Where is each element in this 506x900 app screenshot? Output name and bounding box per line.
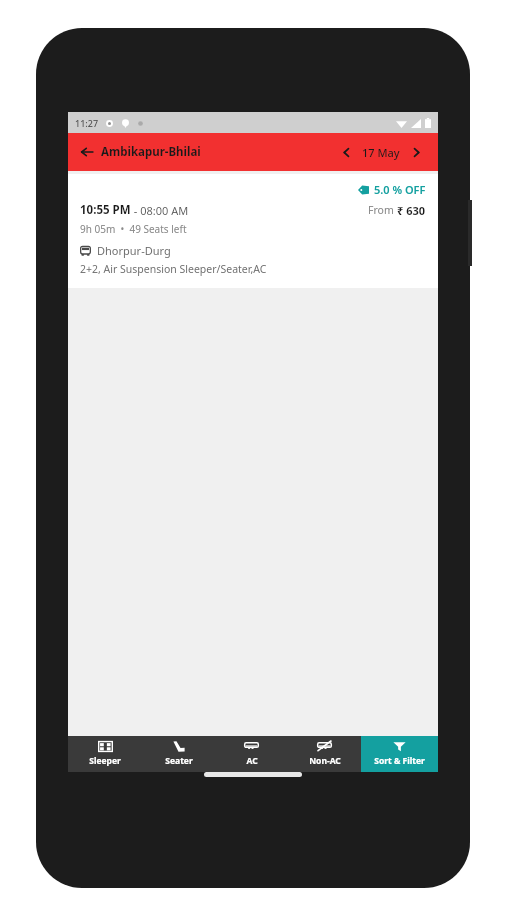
button[interactable]: Back [80,144,207,160]
staticText: Non-AC [309,755,341,767]
staticText: AC [246,755,258,767]
button[interactable]: Non-AC [288,736,361,772]
other: Back [80,145,94,159]
button[interactable]: 5.0 % OFF [68,174,438,288]
button[interactable]: Next day [406,142,426,162]
staticText: From [368,203,397,217]
staticText: - 08:00 AM [131,203,189,218]
staticText: Seater [165,755,193,767]
staticText: 5.0 % OFF [374,182,426,197]
staticText: Dhorpur-Durg [97,243,171,258]
button[interactable]: Previous day [336,142,356,162]
staticText: Sort & Filter [374,755,425,767]
staticText: 11:27 [75,117,99,129]
staticText: ₹ 630 [397,203,426,218]
staticText: 9h 05m • 49 Seats left [80,222,187,236]
button[interactable]: Sort & Filter [361,736,438,772]
staticText: 10:55 PM [80,202,131,218]
staticText: Ambikapur-Bhilai [101,144,201,160]
staticText: Sleeper [89,755,121,767]
staticText: 2+2, Air Suspension Sleeper/Seater,AC [80,262,267,276]
staticText: 17 May [362,145,400,160]
button[interactable]: Seater [142,736,215,772]
button[interactable]: Sleeper [68,736,142,772]
button[interactable]: AC [215,736,288,772]
